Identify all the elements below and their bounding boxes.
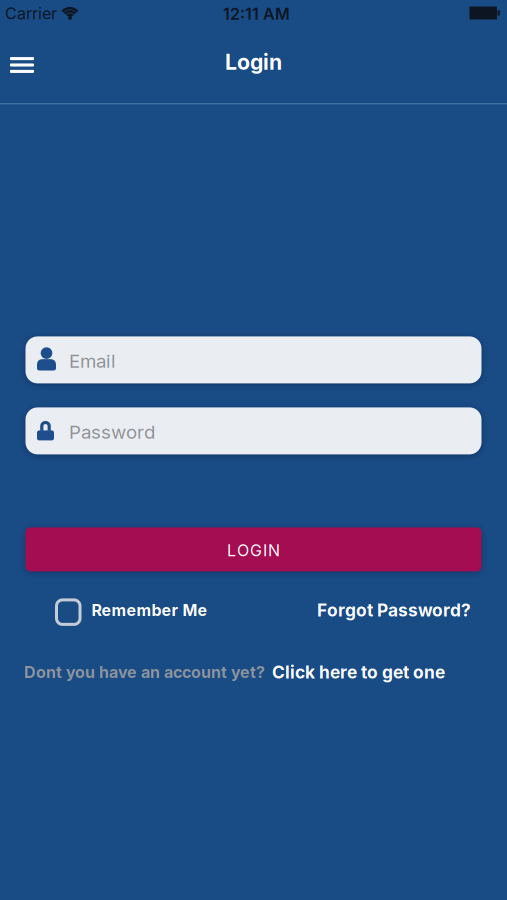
staticText: Click here to get one [272,662,445,682]
staticText: Forgot Password? [317,600,471,620]
staticText: Dont you have an account yet? [24,663,265,682]
button[interactable]: Menu [0,49,46,81]
button[interactable]: Email [25,336,481,383]
staticText: Password [69,421,155,443]
staticText: LOGIN [227,541,280,560]
button[interactable]: LOGIN [25,527,481,571]
button[interactable]: Remember Me [55,598,207,626]
staticText: Carrier [5,4,57,23]
button[interactable]: Click here to get one [272,662,445,682]
staticText: Email [69,350,116,372]
staticText: Login [225,49,282,75]
staticText: 12:11 AM [223,5,290,23]
button[interactable]: Password [25,407,481,454]
staticText: Remember Me [91,601,207,620]
button[interactable]: Forgot Password? [317,602,471,622]
